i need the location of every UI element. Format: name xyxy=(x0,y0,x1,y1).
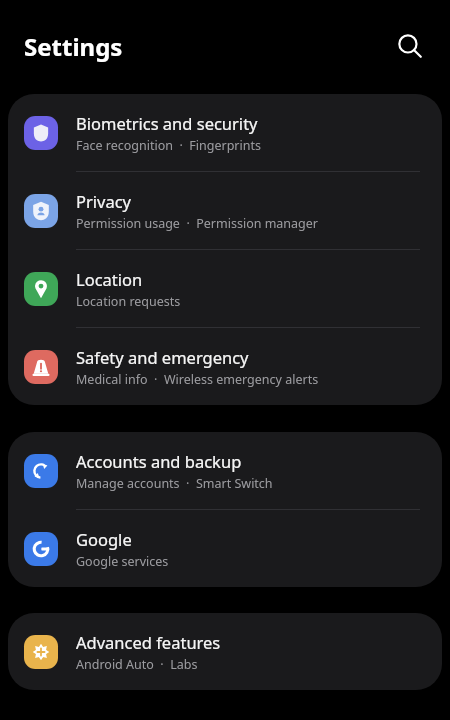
staticText: Manage accounts · Smart Switch xyxy=(76,475,273,492)
staticText: Google xyxy=(76,528,132,550)
button[interactable]: Search xyxy=(388,24,432,68)
button[interactable]: Privacy xyxy=(8,172,442,249)
staticText: Safety and emergency xyxy=(76,346,249,368)
button[interactable]: Google xyxy=(8,510,442,587)
staticText: Privacy xyxy=(76,190,132,212)
staticText: Location xyxy=(76,268,143,290)
button[interactable]: Advanced features xyxy=(8,613,442,690)
button[interactable]: Location xyxy=(8,250,442,327)
staticText: Accounts and backup xyxy=(76,450,242,472)
button[interactable]: Safety and emergency xyxy=(8,328,442,405)
staticText: Google services xyxy=(76,553,169,570)
button[interactable]: Biometrics and security xyxy=(8,94,442,171)
staticText: Settings xyxy=(24,30,123,63)
staticText: Permission usage · Permission manager xyxy=(76,215,319,232)
staticText: Face recognition · Fingerprints xyxy=(76,137,261,154)
staticText: Android Auto · Labs xyxy=(76,656,198,673)
staticText: Advanced features xyxy=(76,631,221,653)
staticText: Location requests xyxy=(76,293,181,310)
staticText: Biometrics and security xyxy=(76,112,258,134)
staticText: Medical info · Wireless emergency alerts xyxy=(76,371,319,388)
button[interactable]: Accounts and backup xyxy=(8,432,442,509)
